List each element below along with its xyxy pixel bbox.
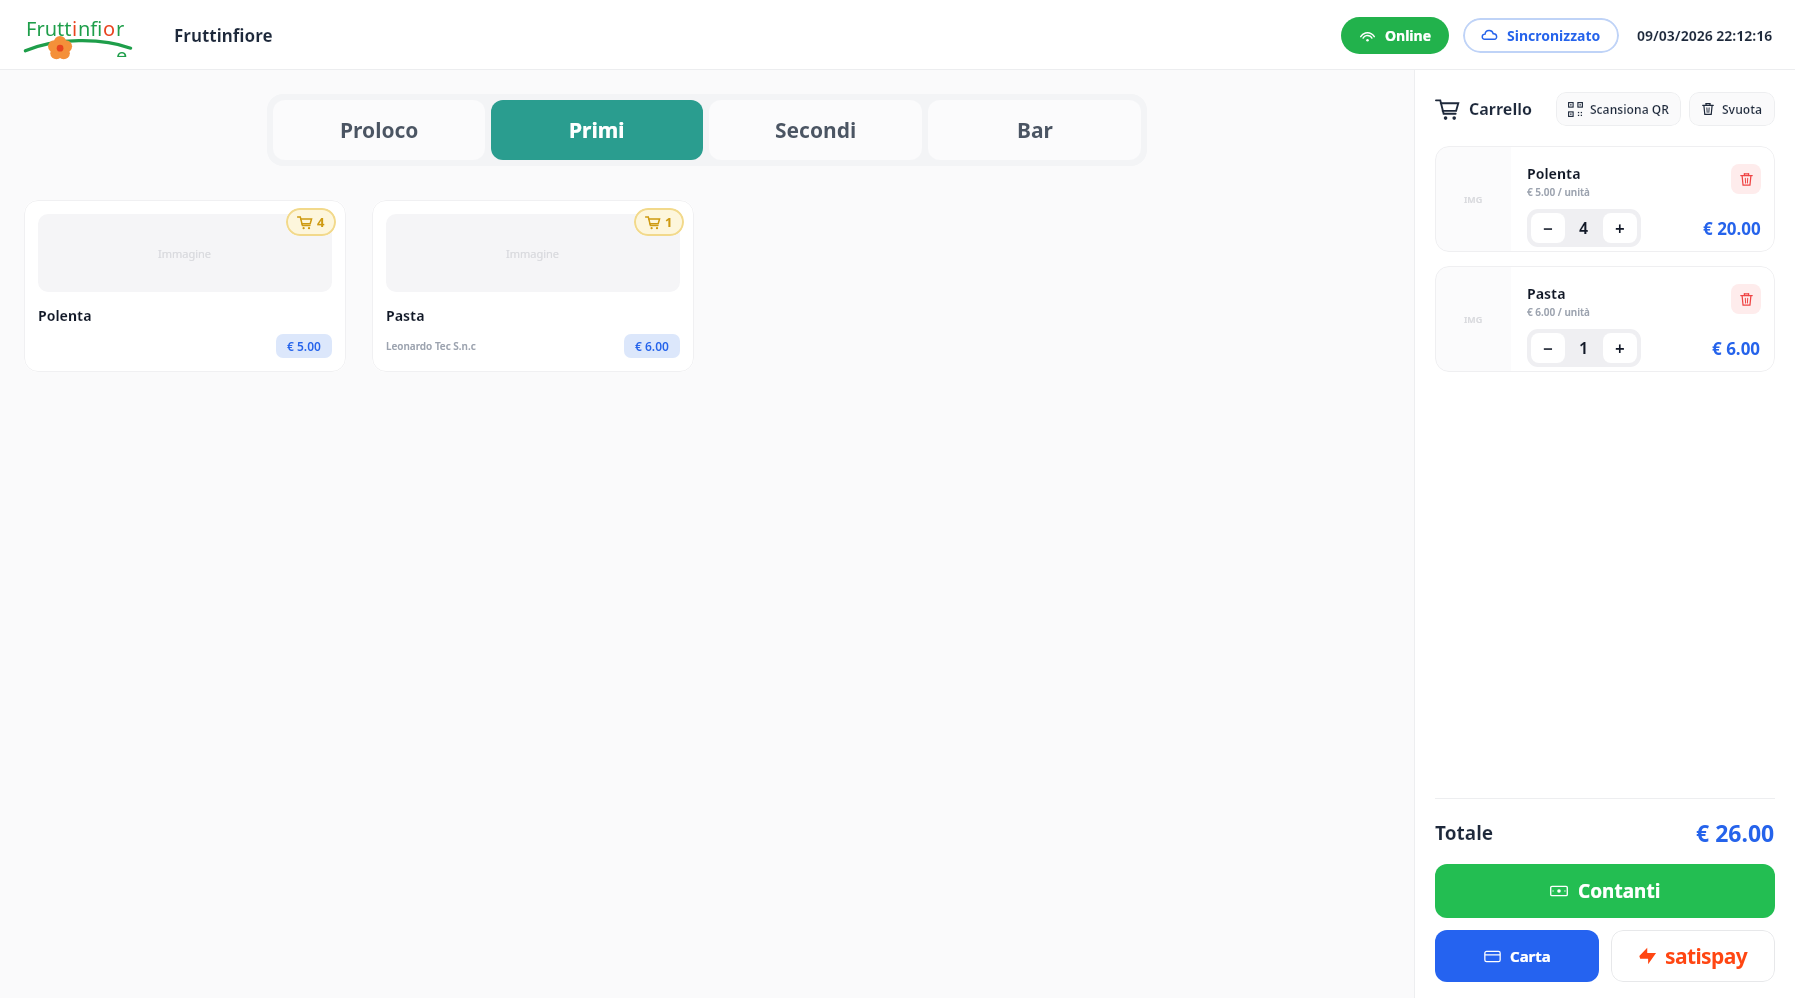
button[interactable]: Svuota: [1689, 92, 1775, 126]
staticText: € 6.00: [1712, 337, 1761, 360]
staticText: 4: [1579, 217, 1589, 239]
staticText: Primi: [569, 116, 625, 145]
staticText: € 5.00 / unità: [1527, 185, 1590, 199]
staticText: Frutt: [26, 15, 72, 42]
button[interactable]: Rimuovi: [1731, 284, 1761, 314]
button[interactable]: Secondi: [709, 100, 922, 160]
staticText: Bar: [1017, 116, 1053, 145]
staticText: € 20.00: [1703, 217, 1761, 240]
staticText: Pasta: [386, 306, 425, 325]
button[interactable]: Scansiona QR: [1556, 92, 1681, 126]
staticText: 1: [665, 213, 673, 231]
button[interactable]: Proloco: [273, 100, 485, 160]
button[interactable]: Carta: [1435, 930, 1599, 982]
staticText: € 6.00 / unità: [1527, 305, 1590, 319]
staticText: Scansiona QR: [1590, 101, 1669, 117]
staticText: i: [72, 15, 78, 42]
staticText: € 6.00: [635, 338, 669, 354]
staticText: +: [1615, 217, 1625, 240]
staticText: −: [1543, 217, 1553, 240]
staticText: IMG: [1464, 313, 1483, 325]
button[interactable]: Immagine: [372, 200, 694, 372]
staticText: re: [116, 15, 134, 57]
button[interactable]: Online: [1341, 17, 1449, 54]
staticText: 1: [1579, 337, 1589, 359]
staticText: 4: [317, 213, 325, 231]
button[interactable]: Contanti: [1435, 864, 1775, 918]
button[interactable]: Primi: [491, 100, 703, 160]
staticText: Svuota: [1722, 101, 1763, 117]
button[interactable]: Aumenta: [1603, 213, 1637, 243]
button[interactable]: Bar: [928, 100, 1141, 160]
staticText: 09/03/2026 22:12:16: [1637, 26, 1773, 45]
button[interactable]: Rimuovi: [1731, 164, 1761, 194]
staticText: nfi: [78, 15, 103, 42]
staticText: € 5.00: [287, 338, 321, 354]
staticText: IMG: [1464, 193, 1483, 205]
button[interactable]: Diminuisci: [1531, 213, 1565, 243]
staticText: −: [1543, 337, 1553, 360]
staticText: Sincronizzato: [1507, 26, 1601, 45]
staticText: Polenta: [38, 306, 92, 325]
staticText: Pasta: [1527, 284, 1566, 303]
staticText: Carta: [1510, 946, 1551, 966]
staticText: Immagine: [158, 246, 212, 261]
button[interactable]: Aumenta: [1603, 333, 1637, 363]
staticText: satispay: [1665, 942, 1748, 971]
staticText: Leonardo Tec S.n.c: [386, 339, 476, 353]
button[interactable]: Immagine: [24, 200, 346, 372]
staticText: Proloco: [340, 116, 419, 145]
staticText: o: [103, 15, 116, 42]
staticText: Fruttinfiore: [174, 24, 273, 47]
staticText: Secondi: [775, 116, 857, 145]
button[interactable]: Paga con Satispay: [1611, 930, 1775, 982]
button[interactable]: Diminuisci: [1531, 333, 1565, 363]
staticText: +: [1615, 337, 1625, 360]
staticText: Polenta: [1527, 164, 1581, 183]
staticText: Online: [1385, 26, 1431, 45]
staticText: € 26.00: [1696, 817, 1775, 848]
staticText: Totale: [1435, 820, 1494, 846]
staticText: Immagine: [506, 246, 560, 261]
staticText: Contanti: [1578, 878, 1661, 904]
staticText: Carrello: [1469, 98, 1532, 120]
button[interactable]: Sincronizzato: [1463, 18, 1619, 53]
